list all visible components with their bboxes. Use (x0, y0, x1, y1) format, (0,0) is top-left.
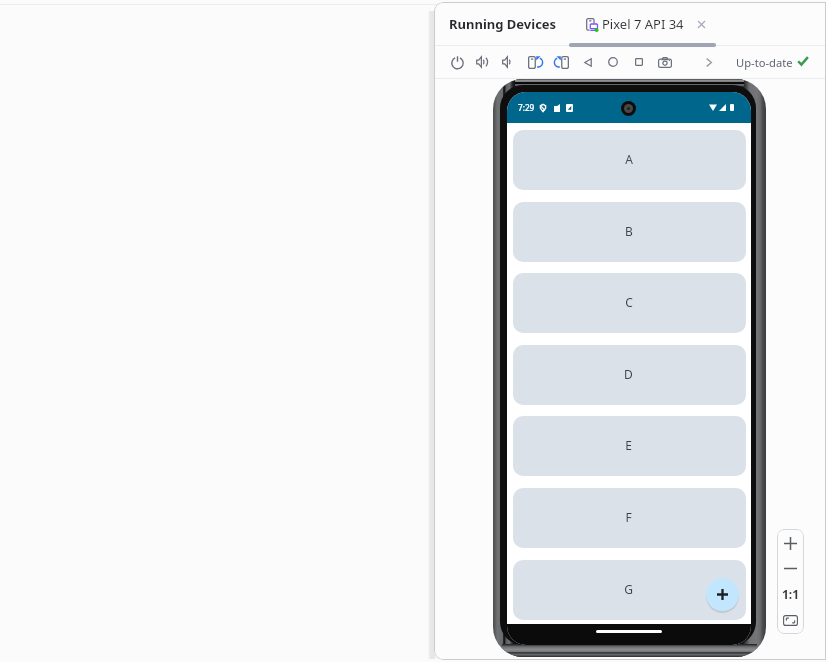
button[interactable]: Rotate left (525, 52, 545, 72)
staticText: A (625, 151, 633, 167)
staticText: B (625, 223, 633, 239)
staticText: 1:1 (782, 586, 800, 602)
staticText: E (625, 437, 632, 453)
button[interactable]: Close tab (693, 16, 709, 32)
button[interactable]: Fit to screen (777, 609, 804, 631)
button[interactable]: Volume down (497, 52, 517, 72)
button[interactable]: B (513, 202, 746, 262)
button[interactable]: Volume up (473, 52, 493, 72)
button[interactable]: F (513, 488, 746, 548)
staticText: Up-to-date (736, 55, 793, 70)
button[interactable]: D (513, 345, 746, 405)
staticText: F (625, 509, 632, 525)
staticText: G (624, 581, 633, 597)
button[interactable]: 1:1 (777, 583, 804, 605)
button[interactable]: Screenshot (655, 52, 675, 72)
button[interactable]: Back (578, 52, 598, 72)
staticText: Pixel 7 API 34 (602, 15, 684, 33)
staticText: D (624, 366, 633, 382)
staticText: Running Devices (449, 15, 557, 33)
staticText: C (625, 294, 633, 310)
button[interactable]: Pixel 7 API 34 (584, 15, 686, 33)
button[interactable]: A (513, 130, 746, 190)
button[interactable]: E (513, 416, 746, 476)
button[interactable]: C (513, 273, 746, 333)
button[interactable]: More (699, 52, 719, 72)
button[interactable]: Rotate right (551, 52, 571, 72)
staticText: 7:29 (518, 102, 535, 113)
button[interactable]: Zoom out (777, 557, 804, 579)
button[interactable]: Power (447, 52, 467, 72)
button[interactable]: Zoom in (777, 532, 804, 554)
button[interactable]: Home (603, 52, 623, 72)
button[interactable]: G (513, 560, 746, 620)
button[interactable]: Overview (629, 52, 649, 72)
button[interactable]: Add (706, 578, 739, 611)
